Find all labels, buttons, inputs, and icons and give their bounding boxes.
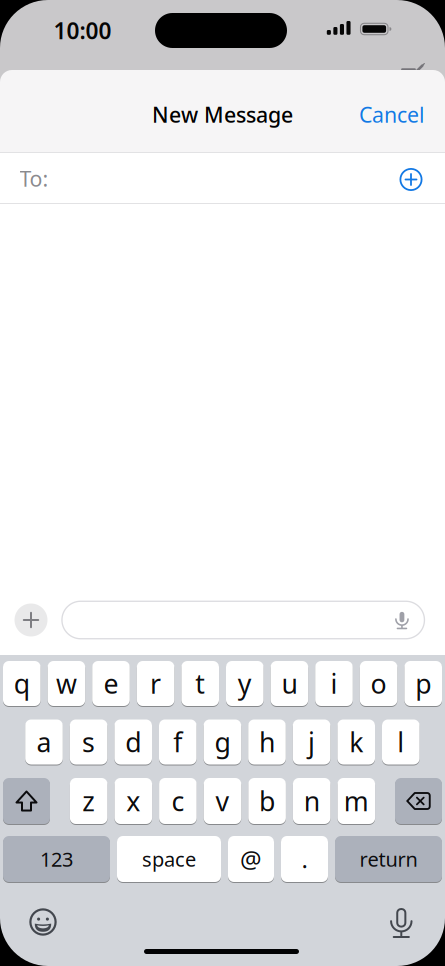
staticText: 10:00 xyxy=(53,15,111,45)
staticText: j xyxy=(308,724,315,760)
staticText: 123 xyxy=(40,846,73,872)
button[interactable]: a xyxy=(25,719,63,764)
staticText: space xyxy=(142,846,196,872)
button[interactable]: h xyxy=(248,719,286,764)
staticText: y xyxy=(238,666,252,701)
staticText: w xyxy=(56,666,77,701)
button[interactable]: u xyxy=(271,661,308,706)
staticText: return xyxy=(359,846,417,872)
button[interactable]: i xyxy=(315,661,353,706)
button[interactable]: Delete xyxy=(395,778,442,824)
button[interactable]: l xyxy=(382,719,420,764)
staticText: p xyxy=(415,666,431,701)
button[interactable]: v xyxy=(204,778,241,824)
staticText: t xyxy=(195,666,205,701)
button[interactable]: j xyxy=(293,719,330,764)
button[interactable]: m xyxy=(337,778,375,824)
button[interactable]: 123 xyxy=(3,836,110,882)
staticText: o xyxy=(371,666,387,701)
button[interactable]: t xyxy=(181,661,219,706)
button[interactable]: space xyxy=(117,836,221,882)
staticText: New Message xyxy=(152,100,293,129)
button[interactable]: p xyxy=(404,661,442,706)
button[interactable]: g xyxy=(204,719,241,764)
staticText: a xyxy=(36,724,51,760)
button[interactable]: o xyxy=(360,661,397,706)
button[interactable]: r xyxy=(137,661,174,706)
staticText: u xyxy=(281,666,297,701)
button[interactable]: return xyxy=(335,836,442,882)
button[interactable]: f xyxy=(159,719,197,764)
staticText: i xyxy=(330,666,337,701)
staticText: c xyxy=(171,783,184,819)
staticText: q xyxy=(14,666,30,701)
staticText: . xyxy=(301,843,307,875)
staticText: f xyxy=(173,724,182,760)
button[interactable]: c xyxy=(159,778,197,824)
button[interactable]: e xyxy=(92,661,130,706)
button[interactable]: Cancel xyxy=(359,100,425,129)
staticText: To: xyxy=(19,164,48,193)
staticText: n xyxy=(304,783,320,819)
button[interactable]: b xyxy=(248,778,286,824)
button[interactable]: y xyxy=(226,661,264,706)
button[interactable]: Emoji xyxy=(21,900,65,944)
staticText: m xyxy=(344,783,369,819)
button[interactable]: k xyxy=(337,719,375,764)
button[interactable]: Add Contact xyxy=(394,163,427,196)
button[interactable]: q xyxy=(3,661,41,706)
staticText: b xyxy=(259,783,275,819)
button[interactable]: Shift xyxy=(3,778,50,824)
button[interactable]: x xyxy=(114,778,152,824)
button[interactable]: n xyxy=(293,778,330,824)
staticText: l xyxy=(397,724,404,760)
staticText: h xyxy=(259,724,275,760)
staticText: e xyxy=(103,666,118,701)
staticText: @ xyxy=(240,843,262,875)
staticText: z xyxy=(82,783,95,819)
button[interactable]: z xyxy=(70,778,107,824)
button[interactable]: Message field xyxy=(62,601,424,639)
staticText: x xyxy=(126,783,140,819)
staticText: Cancel xyxy=(359,100,425,129)
button[interactable]: d xyxy=(114,719,152,764)
staticText: s xyxy=(82,724,95,760)
staticText: d xyxy=(125,724,141,760)
staticText: v xyxy=(215,783,229,819)
staticText: r xyxy=(150,666,161,701)
button[interactable]: Dictation xyxy=(379,901,423,945)
button[interactable]: . xyxy=(281,836,328,882)
staticText: k xyxy=(349,724,363,760)
staticText: g xyxy=(214,724,230,760)
button[interactable]: w xyxy=(48,661,85,706)
button[interactable]: s xyxy=(70,719,107,764)
button[interactable]: Apps xyxy=(14,603,47,636)
button[interactable]: @ xyxy=(228,836,274,882)
